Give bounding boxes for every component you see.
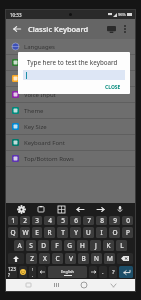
button[interactable]: T (57, 227, 68, 238)
button[interactable]: Top/Bottom Rows (6, 151, 135, 166)
button[interactable]: English (48, 266, 87, 278)
staticText: S (29, 241, 33, 250)
button[interactable]: 8 (96, 216, 107, 225)
button[interactable]: J (90, 240, 101, 251)
button[interactable]: Keyboard (23, 280, 33, 290)
button[interactable]: Settings (15, 203, 27, 215)
staticText: A (17, 241, 22, 250)
button[interactable]: R (44, 227, 55, 238)
button[interactable]: Z (26, 253, 37, 264)
button[interactable]: 6 (70, 216, 81, 225)
button[interactable]: V (65, 253, 76, 264)
staticText: Predictions & Corrections (24, 59, 96, 67)
button[interactable]: Layout (55, 203, 67, 215)
button[interactable]: L (116, 240, 127, 251)
staticText: U (86, 228, 91, 237)
button[interactable] (23, 70, 125, 80)
button[interactable]: 3 (32, 216, 42, 225)
staticText: V (69, 254, 73, 263)
button[interactable]: 5 (57, 216, 68, 225)
button[interactable]: N (91, 253, 102, 264)
staticText: F (55, 241, 59, 250)
button[interactable]: Home (78, 279, 90, 291)
button[interactable]: Emoji (19, 266, 27, 278)
staticText: 7 (87, 216, 91, 225)
staticText: C (55, 254, 60, 263)
button[interactable]: Cast (103, 21, 119, 37)
staticText: D (41, 241, 46, 250)
button[interactable]: Back (10, 22, 24, 36)
button[interactable]: Voice Input (6, 87, 135, 102)
button[interactable]: 1 (8, 216, 18, 225)
button[interactable]: F (51, 240, 62, 251)
button[interactable]: Recents (51, 280, 61, 290)
staticText: CLOSE (105, 84, 121, 91)
staticText: X (43, 254, 47, 263)
staticText: Theme (24, 107, 44, 115)
staticText: E (35, 228, 39, 237)
staticText: I (100, 228, 103, 237)
button[interactable]: Move left (74, 203, 86, 215)
button[interactable]: Next language (89, 266, 97, 278)
button[interactable]: Keyboard Font (6, 135, 135, 150)
staticText: P (126, 228, 130, 237)
staticText: , (32, 272, 34, 277)
staticText: Classic Keyboard (28, 24, 89, 34)
button[interactable]: K (103, 240, 114, 251)
staticText: Type here to test the keyboard (27, 58, 118, 66)
button[interactable]: Backspace (117, 253, 133, 264)
button[interactable]: U (83, 227, 94, 238)
button[interactable]: W (20, 227, 30, 238)
button[interactable]: Previous language (38, 266, 46, 278)
button[interactable]: A (14, 240, 24, 251)
button[interactable]: B (78, 253, 89, 264)
staticText: 10:33 (10, 12, 22, 18)
button[interactable]: More options (119, 23, 131, 35)
staticText: Languages (24, 43, 55, 51)
button[interactable]: Theme (6, 103, 135, 118)
button[interactable]: . (99, 266, 107, 278)
button[interactable]: 123? (8, 266, 17, 278)
button[interactable]: E (32, 227, 42, 238)
button[interactable]: Q (8, 227, 18, 238)
staticText: Key Size (24, 123, 47, 131)
button[interactable]: Predictions & Corrections (6, 55, 135, 70)
staticText: 4 (48, 216, 52, 225)
button[interactable]: 4 (44, 216, 55, 225)
button[interactable]: ! (29, 266, 36, 278)
button[interactable]: H (77, 240, 88, 251)
button[interactable]: Typing (6, 71, 135, 86)
button[interactable]: D (38, 240, 49, 251)
staticText: M (107, 254, 113, 263)
button[interactable]: 9 (109, 216, 120, 225)
staticText: . (102, 268, 104, 276)
button[interactable]: M (104, 253, 115, 264)
button[interactable]: 0 (122, 216, 133, 225)
button[interactable]: O (109, 227, 120, 238)
staticText: W (22, 228, 29, 237)
staticText: ! (32, 267, 34, 272)
button[interactable]: Shift (8, 253, 24, 264)
button[interactable]: ? (109, 266, 117, 278)
button[interactable]: P (122, 227, 133, 238)
button[interactable]: CLOSE (103, 83, 123, 92)
button[interactable]: Voice input (114, 203, 126, 215)
button[interactable]: Enter (119, 266, 133, 278)
staticText: Top/Bottom Rows (24, 155, 74, 163)
button[interactable]: Key Size (6, 119, 135, 134)
staticText: O (112, 228, 118, 237)
button[interactable]: Languages (6, 39, 135, 54)
button[interactable]: C (52, 253, 63, 264)
staticText: 1 (11, 216, 15, 225)
staticText: J (95, 241, 97, 250)
button[interactable]: Clipboard (35, 203, 47, 215)
button[interactable]: X (39, 253, 50, 264)
button[interactable]: Move right (94, 203, 106, 215)
button[interactable]: G (64, 240, 75, 251)
button[interactable]: Y (70, 227, 81, 238)
button[interactable]: S (26, 240, 36, 251)
button[interactable]: 7 (83, 216, 94, 225)
button[interactable]: 2 (20, 216, 30, 225)
button[interactable]: I (96, 227, 107, 238)
button[interactable]: Hide keyboard (108, 280, 118, 290)
